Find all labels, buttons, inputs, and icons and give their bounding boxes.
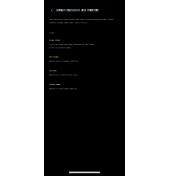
- button[interactable]: Pro video: [49, 55, 125, 63]
- staticText: Record a long scene sped up.: [49, 87, 77, 90]
- button[interactable]: Dual View: [49, 38, 125, 49]
- staticText: Use the front and rear cameras at the sa…: [49, 43, 94, 49]
- staticText: Video: [49, 31, 54, 34]
- staticText: Record at a high frame rate.: [49, 73, 78, 76]
- button[interactable]: Slo-mo: [49, 69, 125, 76]
- staticText: Record with manual controls.: [49, 59, 79, 62]
- staticText: The resolution and frame rate used when …: [49, 18, 113, 24]
- button[interactable]: Back: [51, 9, 53, 12]
- staticText: Default resolution and frame rate: [56, 9, 98, 12]
- staticText: Slo-mo: [49, 69, 56, 72]
- button[interactable]: Time-lapse: [49, 82, 125, 90]
- staticText: Time-lapse: [49, 82, 60, 86]
- staticText: Pro video: [49, 55, 58, 58]
- staticText: Dual View: [49, 38, 60, 41]
